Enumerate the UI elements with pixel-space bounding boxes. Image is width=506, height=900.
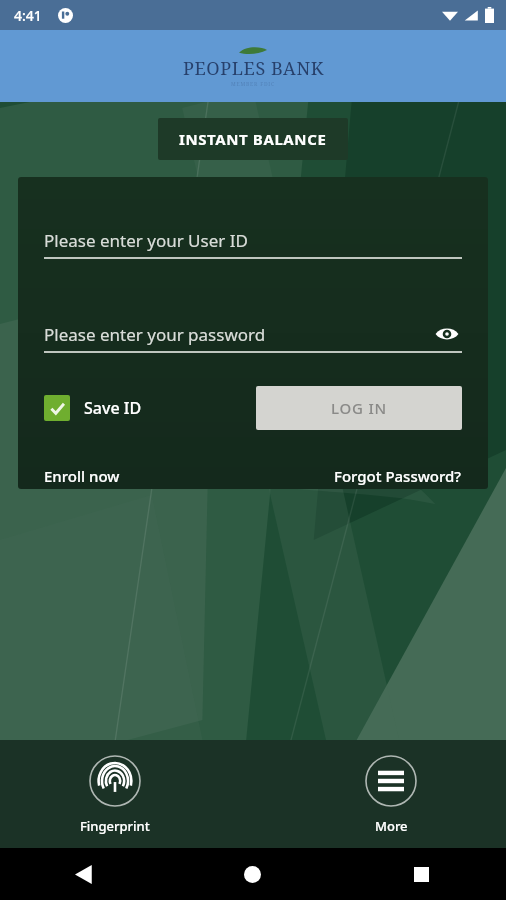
staticText: Please enter your User ID	[44, 229, 248, 252]
button[interactable]: Back	[0, 848, 168, 900]
button[interactable]: Please enter your password	[44, 317, 462, 351]
other: More options	[364, 754, 418, 808]
button[interactable]: More options	[336, 754, 446, 835]
staticText: Enroll now	[44, 466, 120, 486]
button[interactable]: LOG IN	[256, 386, 462, 430]
button[interactable]: INSTANT BALANCE	[158, 118, 348, 160]
button[interactable]: Enroll now	[44, 466, 120, 486]
staticText: PEOPLES BANK	[183, 56, 324, 81]
button[interactable]: Please enter your User ID	[44, 223, 462, 257]
button[interactable]: Recent apps	[337, 848, 506, 900]
staticText: INSTANT BALANCE	[179, 129, 327, 149]
staticText: Please enter your password	[44, 323, 266, 346]
button[interactable]: Home	[168, 848, 337, 900]
button[interactable]: Save ID	[44, 395, 142, 421]
button[interactable]: Forgot Password?	[334, 466, 462, 486]
staticText: 4:41	[14, 6, 42, 25]
staticText: More	[375, 817, 408, 835]
button[interactable]: Show password	[432, 319, 462, 349]
staticText: Save ID	[84, 397, 142, 419]
staticText: Forgot Password?	[334, 466, 462, 486]
button[interactable]: Fingerprint login	[60, 754, 170, 835]
other: Fingerprint login	[88, 754, 142, 808]
staticText: MEMBER FDIC	[231, 81, 275, 88]
staticText: Fingerprint	[80, 817, 150, 835]
staticText: LOG IN	[331, 398, 388, 418]
